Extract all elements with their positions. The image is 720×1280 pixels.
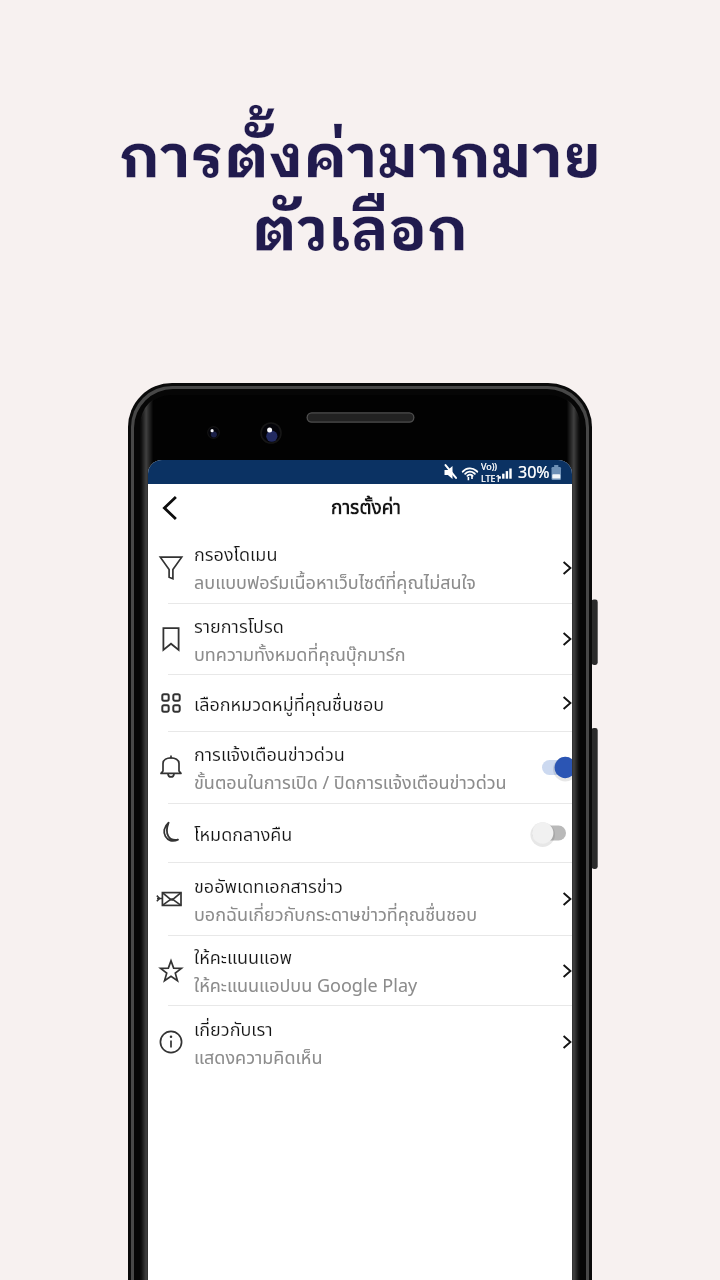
button[interactable]: Open — [548, 675, 572, 731]
button[interactable]: Open — [548, 936, 572, 1005]
staticText: Vo)) — [481, 460, 498, 472]
staticText: ให้คะแนนแอปบน Google Play — [194, 973, 418, 1000]
button[interactable]: Open — [548, 604, 572, 674]
button[interactable]: Open — [548, 863, 572, 935]
button[interactable]: กรองโดเมน — [148, 532, 572, 603]
button[interactable]: ขออัพเดทเอกสารข่าว — [148, 863, 572, 935]
staticText: LTE1 — [481, 472, 501, 484]
button[interactable]: ให้คะแนนแอพ — [148, 936, 572, 1005]
button[interactable]: Night mode off — [532, 804, 572, 862]
button[interactable]: เกี่ยวกับเรา — [148, 1006, 572, 1078]
button[interactable]: Breaking news alerts on — [542, 732, 572, 803]
staticText: รายการโปรด — [194, 614, 284, 641]
button[interactable]: Back — [149, 487, 191, 529]
staticText: การแจ้งเตือนข่าวด่วน — [194, 742, 345, 769]
staticText: บอกฉันเกี่ยวกับกระดาษข่าวที่คุณชื่นชอบ — [194, 902, 478, 929]
staticText: ลบแบบฟอร์มเนื้อหาเว็บไซต์ที่คุณไม่สนใจ — [194, 570, 476, 597]
button[interactable]: การแจ้งเตือนข่าวด่วน — [148, 732, 572, 803]
button[interactable]: รายการโปรด — [148, 604, 572, 674]
staticText: ให้คะแนนแอพ — [194, 945, 292, 972]
staticText: ขั้นตอนในการเปิด / ปิดการแจ้งเตือนข่าวด่… — [194, 770, 507, 797]
staticText: การตั้งค่า — [331, 494, 402, 523]
staticText: 30% — [518, 461, 550, 483]
button[interactable]: โหมดกลางคืน — [148, 804, 572, 862]
staticText: เลือกหมวดหมู่ที่คุณชื่นชอบ — [194, 692, 385, 719]
staticText: กรองโดเมน — [194, 542, 278, 569]
staticText: บทความทั้งหมดที่คุณบุ๊กมาร์ก — [194, 642, 406, 669]
button[interactable]: Open — [548, 532, 572, 603]
button[interactable]: Open — [548, 1006, 572, 1078]
staticText: ขออัพเดทเอกสารข่าว — [194, 874, 343, 901]
button[interactable]: เลือกหมวดหมู่ที่คุณชื่นชอบ — [148, 675, 572, 731]
staticText: การตั้งค่ามากมาย ตัวเลือก — [0, 111, 720, 282]
staticText: แสดงความคิดเห็น — [194, 1045, 323, 1072]
staticText: โหมดกลางคืน — [194, 822, 293, 849]
staticText: เกี่ยวกับเรา — [194, 1017, 273, 1044]
